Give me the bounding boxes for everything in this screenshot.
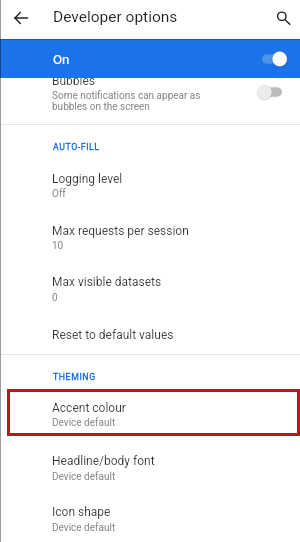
staticText: Off bbox=[52, 188, 66, 200]
button[interactable] bbox=[0, 318, 300, 354]
staticText: 10 bbox=[52, 240, 64, 252]
button[interactable]: Search bbox=[269, 4, 295, 30]
button[interactable] bbox=[0, 39, 300, 78]
staticText: AUTO-FILL bbox=[53, 142, 100, 152]
staticText: Max visible datasets bbox=[52, 275, 162, 289]
button[interactable] bbox=[0, 214, 300, 266]
button[interactable]: Back bbox=[8, 5, 34, 31]
button[interactable] bbox=[0, 162, 300, 214]
staticText: Device default bbox=[52, 522, 116, 534]
staticText: Device default bbox=[52, 471, 116, 483]
staticText: THEMING bbox=[53, 372, 96, 382]
staticText: Device default bbox=[52, 417, 116, 429]
button[interactable] bbox=[0, 266, 300, 318]
staticText: On bbox=[53, 52, 70, 67]
button[interactable] bbox=[0, 443, 300, 495]
button[interactable] bbox=[0, 391, 300, 443]
staticText: Bubbles bbox=[52, 74, 96, 88]
staticText: 0 bbox=[52, 292, 58, 304]
button[interactable]: Bubbles toggle bbox=[256, 83, 286, 101]
staticText: bubbles on the screen bbox=[52, 101, 150, 113]
staticText: Headline/body font bbox=[52, 454, 155, 468]
staticText: Some notifications can appear as bbox=[52, 90, 201, 102]
staticText: Max requests per session bbox=[52, 224, 189, 238]
staticText: Developer options bbox=[53, 8, 178, 26]
staticText: Icon shape bbox=[52, 505, 111, 519]
staticText: Accent colour bbox=[52, 401, 126, 415]
button[interactable] bbox=[0, 78, 300, 124]
staticText: Logging level bbox=[52, 172, 123, 186]
button[interactable] bbox=[0, 495, 300, 542]
button[interactable]: Developer options toggle bbox=[256, 50, 288, 68]
staticText: Reset to default values bbox=[52, 328, 174, 342]
